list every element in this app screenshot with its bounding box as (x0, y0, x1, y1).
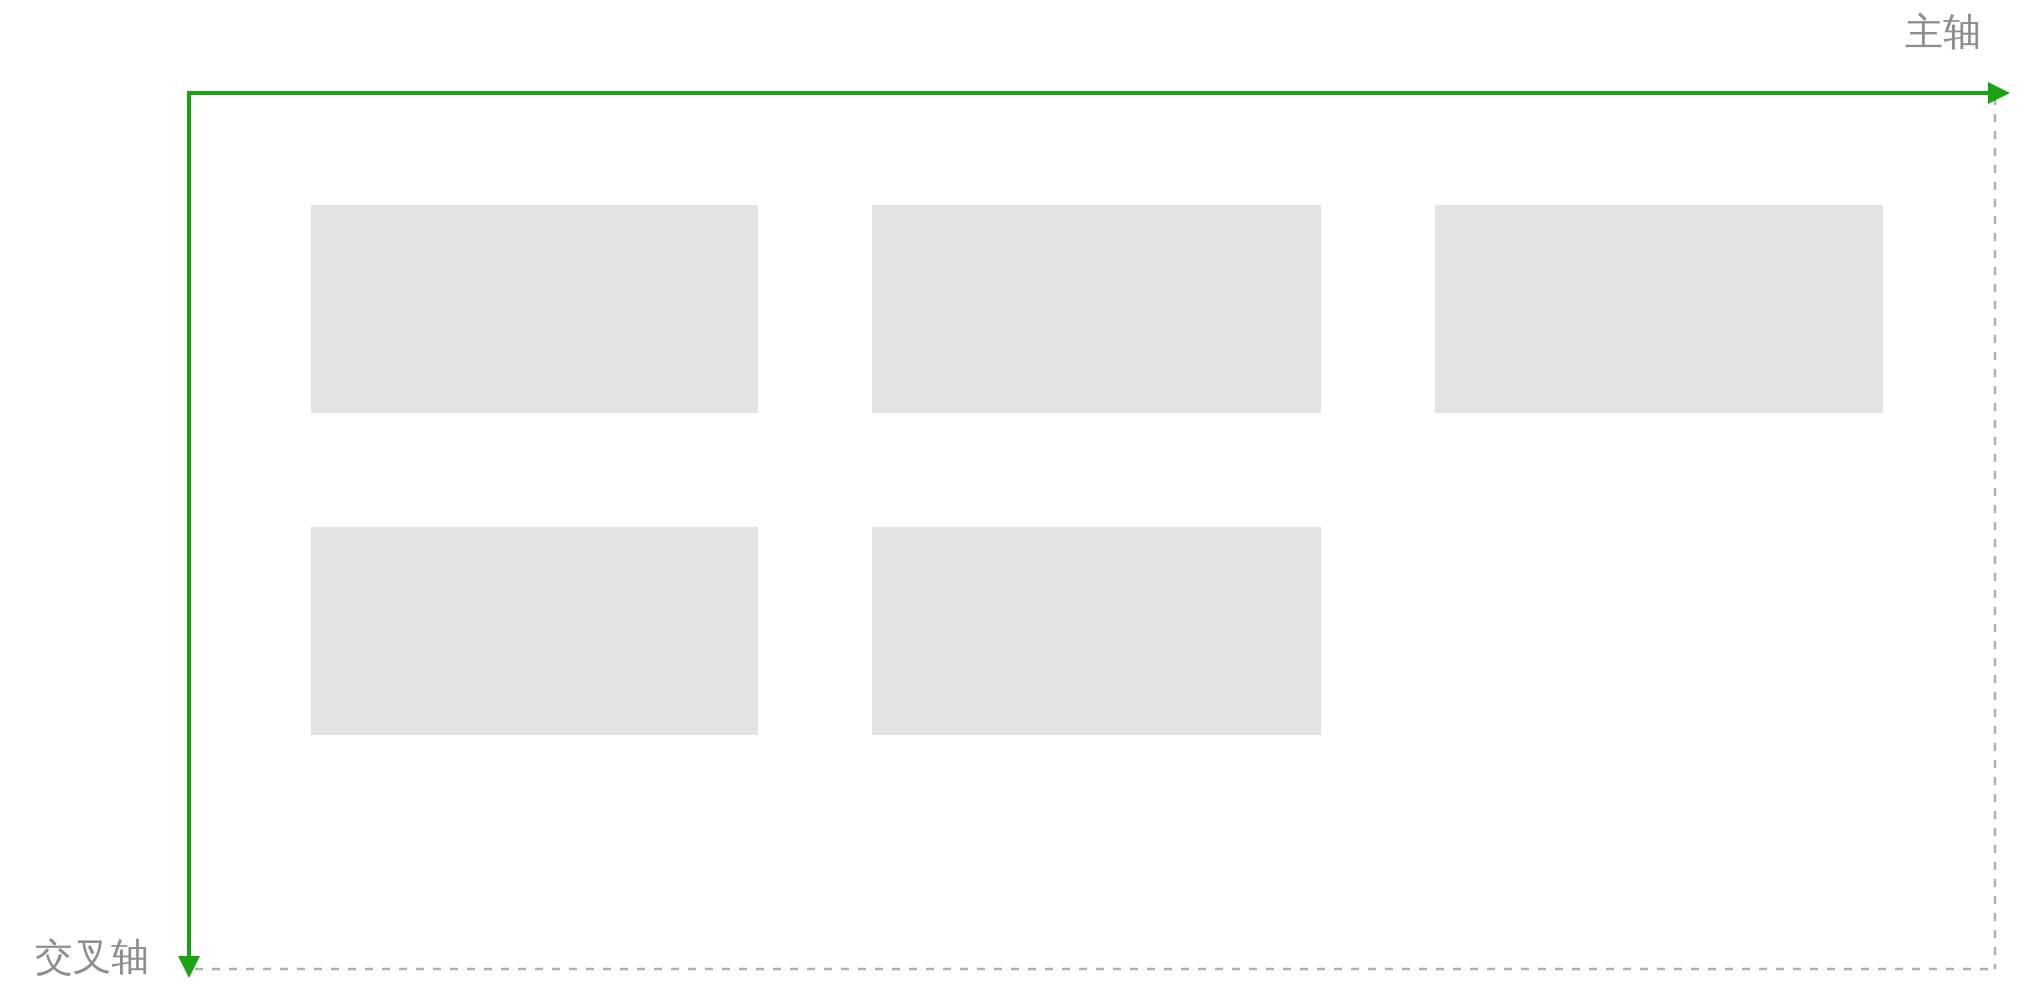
button[interactable]: 交叉轴 (35, 933, 149, 981)
button[interactable]: 主轴 (1905, 8, 1981, 56)
staticText: 交叉轴 (35, 933, 149, 981)
staticText: 主轴 (1905, 8, 1981, 56)
